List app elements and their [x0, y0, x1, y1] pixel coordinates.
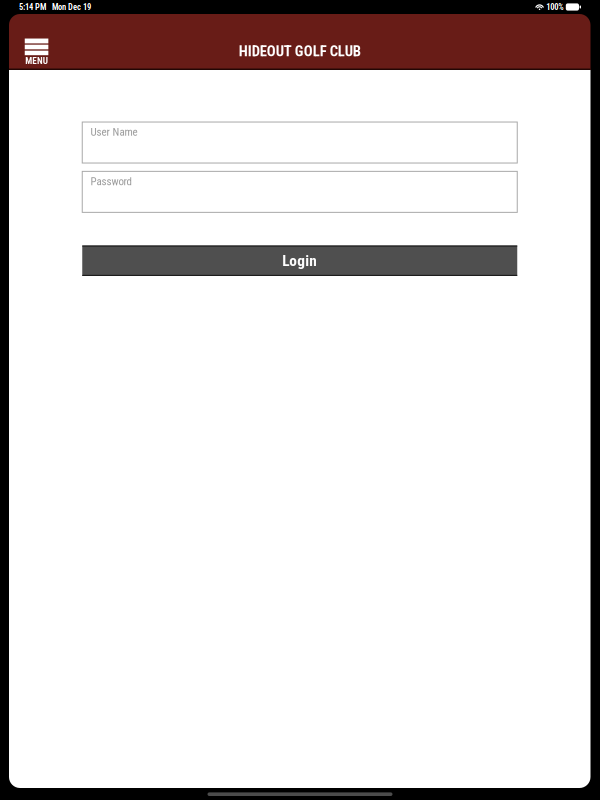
staticText: Login	[282, 252, 317, 270]
staticText: HIDEOUT GOLF CLUB	[239, 43, 361, 60]
staticText: MENU	[25, 55, 48, 66]
staticText: 100%	[546, 2, 563, 12]
staticText: User Name	[90, 126, 137, 138]
button[interactable]: User Name	[82, 122, 517, 163]
staticText: Password	[90, 175, 131, 188]
button[interactable]: Menu	[24, 14, 49, 70]
button[interactable]: Login	[82, 245, 517, 276]
staticText: 5:14 PM Mon Dec 19	[19, 2, 91, 12]
button[interactable]: Password	[82, 171, 517, 212]
